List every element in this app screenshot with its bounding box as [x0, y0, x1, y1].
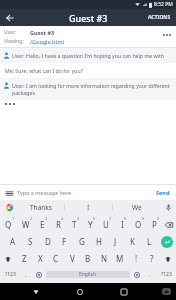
staticText: 8:52 PM: [154, 1, 173, 8]
staticText: W: [22, 219, 30, 230]
staticText: 3: [45, 216, 48, 221]
staticText: ?123: [5, 271, 16, 278]
staticText: ?123: [161, 271, 172, 278]
button[interactable]: ,: [20, 267, 32, 282]
button[interactable]: L: [141, 233, 158, 250]
button[interactable]: Send: [154, 186, 172, 199]
staticText: I: [121, 219, 124, 230]
button[interactable]: F: [56, 233, 73, 250]
button[interactable]: Recent apps: [115, 283, 132, 300]
button[interactable]: Y: [82, 216, 98, 233]
staticText: O: [135, 219, 142, 230]
button[interactable]: !: [128, 250, 144, 267]
staticText: D: [45, 236, 51, 247]
button[interactable]: D: [39, 233, 56, 250]
button[interactable]: T: [66, 216, 82, 233]
staticText: 9: [142, 216, 145, 221]
button[interactable]: Shift: [160, 250, 176, 267]
staticText: K: [130, 236, 135, 247]
staticText: Type a message here: [17, 189, 72, 196]
button[interactable]: G: [73, 233, 90, 250]
staticText: Guest #3: [69, 12, 108, 24]
staticText: V: [70, 253, 75, 264]
staticText: N: [101, 253, 108, 264]
button[interactable]: ?123: [0, 267, 20, 282]
button[interactable]: V: [64, 250, 80, 267]
button[interactable]: U: [98, 216, 114, 233]
button[interactable]: K: [124, 233, 141, 250]
staticText: Q: [5, 219, 12, 230]
button[interactable]: Back: [27, 283, 44, 300]
button[interactable]: Type a message here: [17, 189, 154, 196]
button[interactable]: E: [34, 216, 50, 233]
button[interactable]: O: [130, 216, 146, 233]
button[interactable]: Switch keyboard: [159, 284, 174, 299]
button[interactable]: ?: [144, 250, 160, 267]
staticText: 1: [12, 216, 15, 221]
staticText: Me: Sure, what can I do for you?: [5, 67, 83, 74]
button[interactable]: I: [114, 216, 130, 233]
staticText: R: [56, 219, 61, 230]
staticText: Z: [22, 253, 27, 264]
staticText: Guest #3: [30, 29, 55, 36]
staticText: ACTIONS: [148, 14, 171, 21]
staticText: U: [103, 219, 109, 230]
button[interactable]: ?123: [156, 267, 176, 282]
button[interactable]: Q: [0, 216, 17, 233]
button[interactable]: We: [113, 200, 160, 214]
button[interactable]: Shift: [0, 250, 16, 267]
button[interactable]: /Google.html: [30, 38, 65, 45]
button[interactable]: B: [80, 250, 96, 267]
staticText: 4: [61, 216, 64, 221]
staticText: ,: [25, 271, 27, 279]
button[interactable]: .: [144, 267, 156, 282]
staticText: We: [132, 203, 142, 212]
staticText: P: [152, 219, 157, 230]
staticText: F: [62, 236, 67, 247]
staticText: L: [147, 236, 152, 247]
button[interactable]: Back: [3, 11, 17, 25]
staticText: A: [10, 236, 16, 247]
button[interactable]: N: [96, 250, 112, 267]
button[interactable]: Voice input: [160, 200, 176, 214]
staticText: I: [87, 203, 90, 212]
button[interactable]: Enter: [161, 236, 173, 248]
staticText: 7: [109, 216, 112, 221]
button[interactable]: A: [4, 233, 22, 250]
button[interactable]: Thanks: [18, 200, 64, 214]
staticText: H: [96, 236, 102, 247]
button[interactable]: Home: [71, 283, 88, 300]
button[interactable]: C: [48, 250, 64, 267]
button[interactable]: ACTIONS: [146, 11, 173, 24]
staticText: .: [149, 271, 151, 279]
button[interactable]: R: [50, 216, 66, 233]
button[interactable]: English: [46, 271, 130, 278]
button[interactable]: P: [146, 216, 162, 233]
button[interactable]: Settings: [130, 267, 144, 282]
button[interactable]: Menu: [4, 188, 14, 198]
button[interactable]: More options: [161, 29, 173, 41]
button[interactable]: Backspace: [162, 216, 176, 233]
button[interactable]: W: [17, 216, 34, 233]
staticText: ?: [150, 253, 154, 264]
staticText: 8: [124, 216, 127, 221]
staticText: 0: [157, 216, 160, 221]
button[interactable]: I: [65, 200, 112, 214]
staticText: G: [79, 236, 85, 247]
staticText: Viewing:: [4, 38, 24, 45]
staticText: !: [135, 253, 138, 264]
staticText: Send: [156, 189, 170, 196]
button[interactable]: Z: [16, 250, 32, 267]
staticText: T: [72, 219, 77, 230]
button[interactable]: H: [90, 233, 107, 250]
button[interactable]: X: [32, 250, 48, 267]
staticText: S: [28, 236, 33, 247]
button[interactable]: Google: [0, 200, 18, 214]
staticText: X: [38, 253, 43, 264]
staticText: User:: [4, 29, 17, 36]
button[interactable]: S: [22, 233, 39, 250]
staticText: Thanks: [30, 203, 52, 212]
button[interactable]: M: [112, 250, 128, 267]
button[interactable]: Emoji: [32, 267, 46, 282]
button[interactable]: J: [107, 233, 124, 250]
